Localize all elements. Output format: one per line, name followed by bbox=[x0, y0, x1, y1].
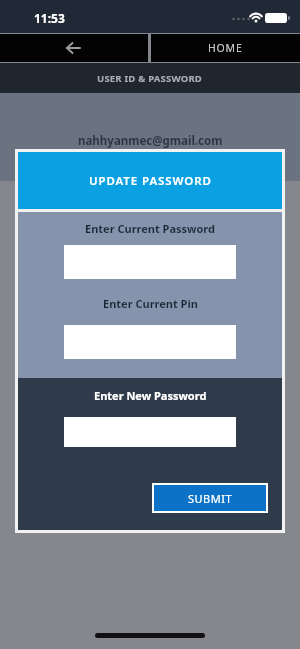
button[interactable]: SUBMIT bbox=[154, 485, 266, 511]
button[interactable] bbox=[0, 34, 148, 62]
button[interactable]: HOME bbox=[151, 34, 300, 62]
staticText: Enter Current Password bbox=[85, 221, 216, 236]
staticText: 11:53 bbox=[34, 10, 65, 26]
staticText: nahhyanmec@gmail.com bbox=[78, 133, 223, 149]
staticText: HOME bbox=[208, 41, 243, 55]
staticText: Enter Current Pin bbox=[103, 296, 198, 311]
staticText: SUBMIT bbox=[188, 491, 233, 506]
staticText: USER ID & PASSWORD bbox=[97, 72, 203, 85]
staticText: UPDATE PASSWORD bbox=[89, 173, 212, 189]
button[interactable]: USER ID & PASSWORD bbox=[0, 63, 300, 93]
staticText: Enter New Password bbox=[94, 388, 207, 403]
